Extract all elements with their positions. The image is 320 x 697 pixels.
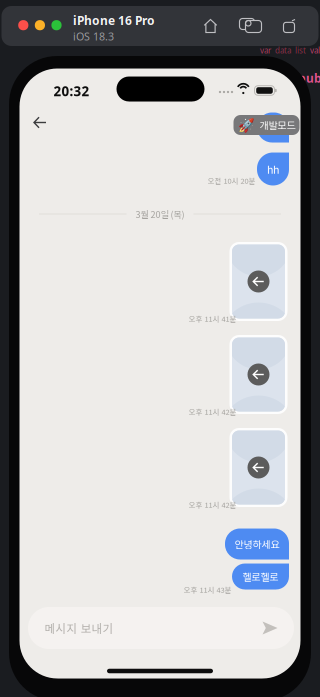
staticText: var — [260, 45, 271, 56]
staticText: 메시지 보내기 — [44, 620, 113, 636]
staticText: h — [270, 120, 276, 135]
staticText: 안녕하세요 — [234, 537, 279, 551]
staticText: pub — [298, 70, 320, 86]
staticText: 20:32 — [53, 82, 89, 100]
staticText: 헬로헬로 — [242, 569, 278, 584]
staticText: data — [275, 45, 291, 56]
staticText: iOS 18.3 — [73, 29, 114, 44]
staticText: list — [295, 45, 306, 56]
staticText: 오후 11시 43분 — [183, 584, 231, 595]
staticText: 개발모드 — [259, 118, 295, 132]
staticText: 오후 11시 42분 — [188, 406, 236, 417]
staticText: 🚀 — [237, 117, 254, 133]
staticText: iPhone 16 Pro — [73, 12, 155, 28]
staticText: hh — [267, 161, 279, 177]
staticText: 3월 20일 (목) — [135, 207, 184, 220]
staticText: val — [310, 45, 320, 56]
button[interactable]: Screenshot — [231, 10, 272, 42]
button[interactable]: Send — [252, 611, 287, 644]
button[interactable]: Rotate — [274, 10, 303, 41]
staticText: 오후 11시 41분 — [188, 313, 236, 324]
button[interactable]: Back — [23, 106, 57, 139]
button[interactable]: Home — [195, 10, 226, 41]
staticText: 오후 11시 42분 — [188, 499, 236, 510]
staticText: 오전 10시 20분 — [207, 175, 255, 186]
